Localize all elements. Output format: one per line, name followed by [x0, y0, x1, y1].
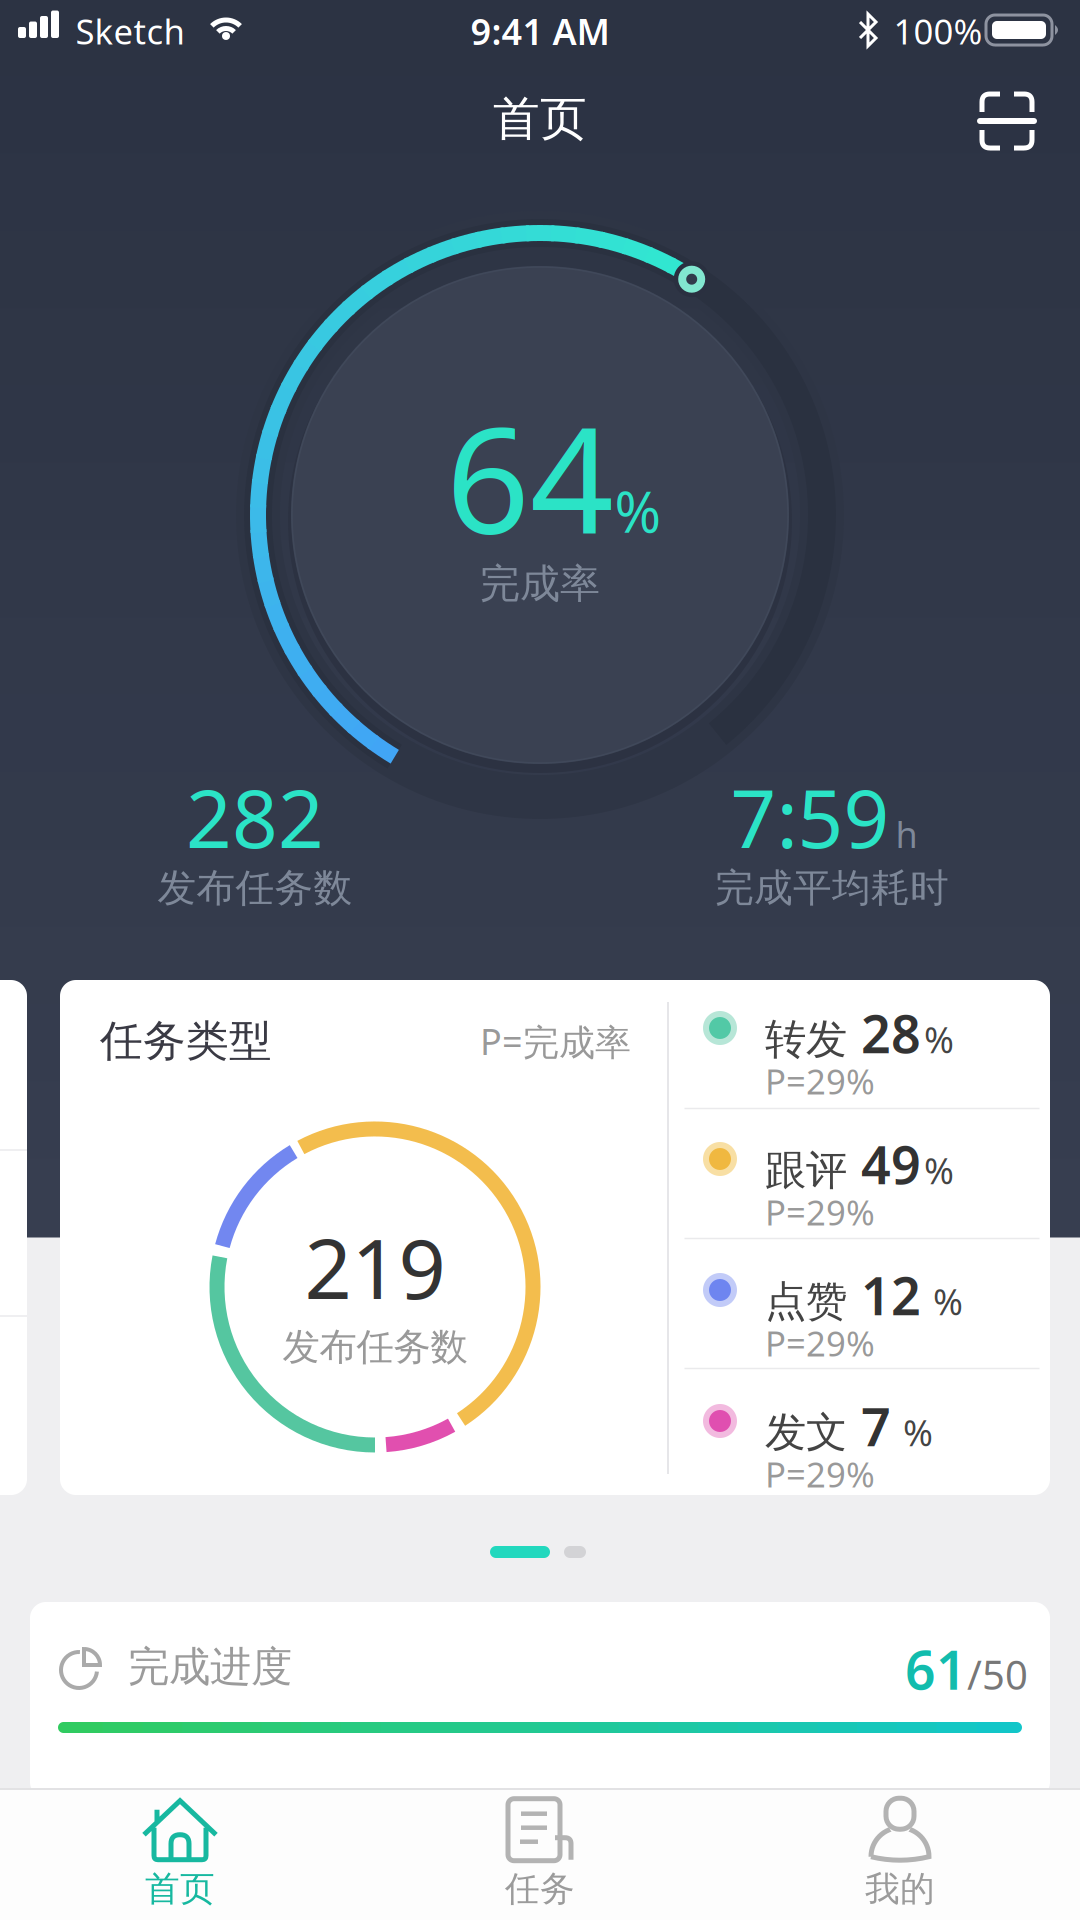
staticText: 219: [304, 1212, 445, 1322]
staticText: %: [903, 1408, 933, 1456]
staticText: 282: [186, 764, 324, 870]
staticText: 点赞: [765, 1276, 847, 1327]
staticText: 完成进度: [128, 1642, 292, 1692]
button[interactable]: 我的: [720, 1789, 1080, 1919]
staticText: Sketch: [75, 8, 184, 54]
staticText: 我的: [865, 1868, 935, 1910]
staticText: 49: [861, 1129, 921, 1199]
staticText: 发文: [765, 1407, 847, 1458]
staticText: 100%: [893, 8, 982, 54]
staticText: 12: [861, 1260, 921, 1330]
staticText: h: [895, 810, 917, 858]
staticText: 任务: [505, 1868, 575, 1910]
staticText: 完成率: [480, 559, 600, 608]
staticText: P=完成率: [480, 1017, 631, 1065]
staticText: 61: [905, 1634, 967, 1704]
staticText: 跟评: [765, 1145, 847, 1196]
staticText: 发布任务数: [282, 1324, 467, 1370]
staticText: P=29%: [765, 1189, 875, 1235]
staticText: 7: [861, 1391, 891, 1461]
button[interactable]: Scan: [979, 93, 1035, 149]
staticText: 64: [446, 380, 614, 574]
staticText: P=29%: [765, 1451, 875, 1497]
staticText: 转发: [765, 1014, 847, 1065]
staticText: 7:59: [730, 764, 889, 870]
staticText: 任务类型: [100, 1015, 272, 1067]
staticText: 9:41 AM: [470, 7, 609, 55]
staticText: P=29%: [765, 1320, 875, 1366]
staticText: /50: [967, 1648, 1028, 1701]
staticText: %: [933, 1277, 963, 1325]
staticText: 完成平均耗时: [715, 864, 949, 912]
button[interactable]: 任务: [360, 1789, 720, 1919]
staticText: 28: [861, 998, 921, 1068]
staticText: %: [924, 1146, 954, 1194]
staticText: 发布任务数: [157, 864, 352, 912]
staticText: 首页: [493, 90, 587, 148]
button[interactable]: 首页: [0, 1789, 360, 1919]
staticText: P=29%: [765, 1058, 875, 1104]
staticText: %: [614, 474, 661, 548]
staticText: %: [924, 1015, 954, 1063]
staticText: 首页: [145, 1868, 215, 1910]
